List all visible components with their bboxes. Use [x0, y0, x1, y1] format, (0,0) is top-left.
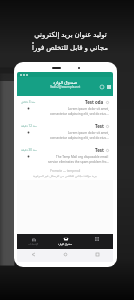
- staticText: consectetur adipiscing elit, sed do eius…: [50, 112, 109, 116]
- button[interactable]: صندوق الوارد: [49, 234, 81, 249]
- staticText: منذ 12 دقيقة: [21, 124, 37, 128]
- staticText: صندوق الوارد: [58, 242, 73, 246]
- button[interactable]: صندوق الوارد: [17, 77, 113, 96]
- button[interactable]: Back: [17, 249, 49, 262]
- staticText: Test: [95, 147, 104, 153]
- staticText: 9sdk2@example.net: [50, 85, 81, 89]
- button[interactable]: منذ 3 دقائق: [17, 96, 113, 120]
- button[interactable]: Apps: [81, 234, 113, 249]
- button[interactable]: منذ 12 دقيقة: [17, 120, 113, 144]
- staticText: بريد مؤقت مجاني للتخلص من الرسائل غير ال…: [33, 174, 97, 178]
- staticText: service eliminates the spam problem fro.…: [48, 160, 109, 164]
- button[interactable]: الإعدادات: [17, 234, 49, 249]
- staticText: Lorem ipsum dolor sit amet,: [68, 107, 109, 111]
- staticText: صندوق الوارد: [53, 79, 78, 85]
- staticText: مجاني و قابل للتخلص فوراً: [32, 43, 108, 53]
- staticText: Lorem ipsum dolor sit amet,: [68, 131, 109, 135]
- button[interactable]: Home: [49, 249, 81, 262]
- button[interactable]: Recents: [81, 249, 113, 262]
- button[interactable]: More options: [105, 83, 112, 90]
- staticText: Test: [95, 123, 104, 129]
- staticText: الإعدادات: [28, 243, 39, 246]
- staticText: منذ 30 دقيقة: [21, 148, 37, 152]
- button[interactable]: Refresh: [98, 83, 105, 90]
- staticText: منذ 3 دقائق: [21, 100, 36, 104]
- staticText: Test oda: [85, 99, 104, 105]
- staticText: توليد عنوان بريد إلكتروني: [34, 30, 107, 40]
- button[interactable]: منذ 30 دقيقة: [17, 144, 113, 168]
- staticText: The Temp Mail org disposable email: [56, 155, 109, 159]
- staticText: Promote — tempmail: [50, 169, 81, 173]
- staticText: consectetur adipiscing elit, sed do eius…: [50, 136, 109, 140]
